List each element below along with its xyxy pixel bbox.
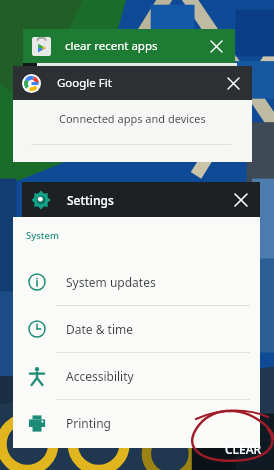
button[interactable]: Connected apps and devices <box>13 100 252 137</box>
button[interactable]: Close clear recent apps <box>206 36 226 56</box>
staticText: Printing <box>66 415 111 431</box>
button[interactable]: clear recent apps <box>23 29 235 63</box>
button[interactable]: Accessibility <box>13 353 260 399</box>
staticText: Connected apps and devices <box>59 111 206 126</box>
staticText: System updates <box>66 274 156 290</box>
staticText: Google Fit <box>57 75 112 91</box>
staticText: Accessibility <box>66 368 134 384</box>
button[interactable]: Settings <box>22 182 260 217</box>
staticText: CLEAR <box>225 441 262 457</box>
button[interactable]: System updates <box>13 259 260 305</box>
button[interactable]: Date & time <box>13 306 260 352</box>
staticText: System <box>26 229 59 242</box>
button[interactable]: CLEAR <box>217 436 270 462</box>
button[interactable]: Close Settings <box>231 190 251 210</box>
staticText: Settings <box>67 192 114 208</box>
button[interactable]: Printing <box>13 400 260 446</box>
button[interactable]: Close Google Fit <box>223 73 243 93</box>
staticText: Date & time <box>66 321 134 337</box>
staticText: clear recent apps <box>65 38 158 54</box>
button[interactable]: Google Fit <box>13 66 252 100</box>
